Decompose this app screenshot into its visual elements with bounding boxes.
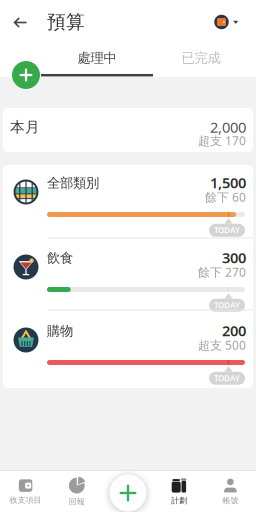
staticText: 1,500: [210, 173, 246, 192]
staticText: TODAY: [214, 225, 240, 235]
button[interactable]: 收支項目: [1, 474, 51, 510]
staticText: 餘下 60: [205, 189, 246, 205]
staticText: 300: [222, 248, 246, 267]
button[interactable]: 已完成: [149, 43, 252, 73]
button[interactable]: 回報: [52, 474, 102, 510]
button[interactable]: Account: [214, 12, 240, 32]
staticText: 帳號: [222, 496, 238, 505]
staticText: TODAY: [214, 373, 240, 383]
staticText: 餘下 270: [198, 264, 246, 280]
button[interactable]: 本月: [3, 108, 253, 152]
button[interactable]: Add: [109, 474, 146, 511]
staticText: 收支項目: [10, 495, 42, 505]
button[interactable]: Back: [6, 8, 34, 36]
staticText: TODAY: [214, 300, 240, 310]
staticText: 全部類別: [47, 175, 99, 191]
staticText: 200: [222, 321, 246, 340]
button[interactable]: 飲食: [0, 240, 253, 313]
button[interactable]: Add budget: [12, 61, 40, 89]
button[interactable]: 購物: [0, 313, 253, 386]
staticText: 超支 170: [198, 132, 246, 148]
staticText: 購物: [47, 323, 73, 339]
staticText: 2,000: [210, 117, 246, 137]
staticText: 計劃: [171, 496, 187, 505]
staticText: 處理中: [77, 50, 116, 66]
staticText: 超支 500: [198, 337, 246, 353]
button[interactable]: 帳號: [205, 474, 255, 510]
staticText: 本月: [10, 118, 40, 136]
button[interactable]: 處理中: [41, 43, 153, 73]
button[interactable]: 全部類別: [0, 165, 253, 238]
staticText: 飲食: [47, 250, 73, 266]
staticText: 回報: [69, 497, 85, 506]
staticText: 預算: [47, 10, 85, 33]
staticText: 已完成: [181, 50, 220, 66]
button[interactable]: 計劃: [154, 474, 204, 510]
